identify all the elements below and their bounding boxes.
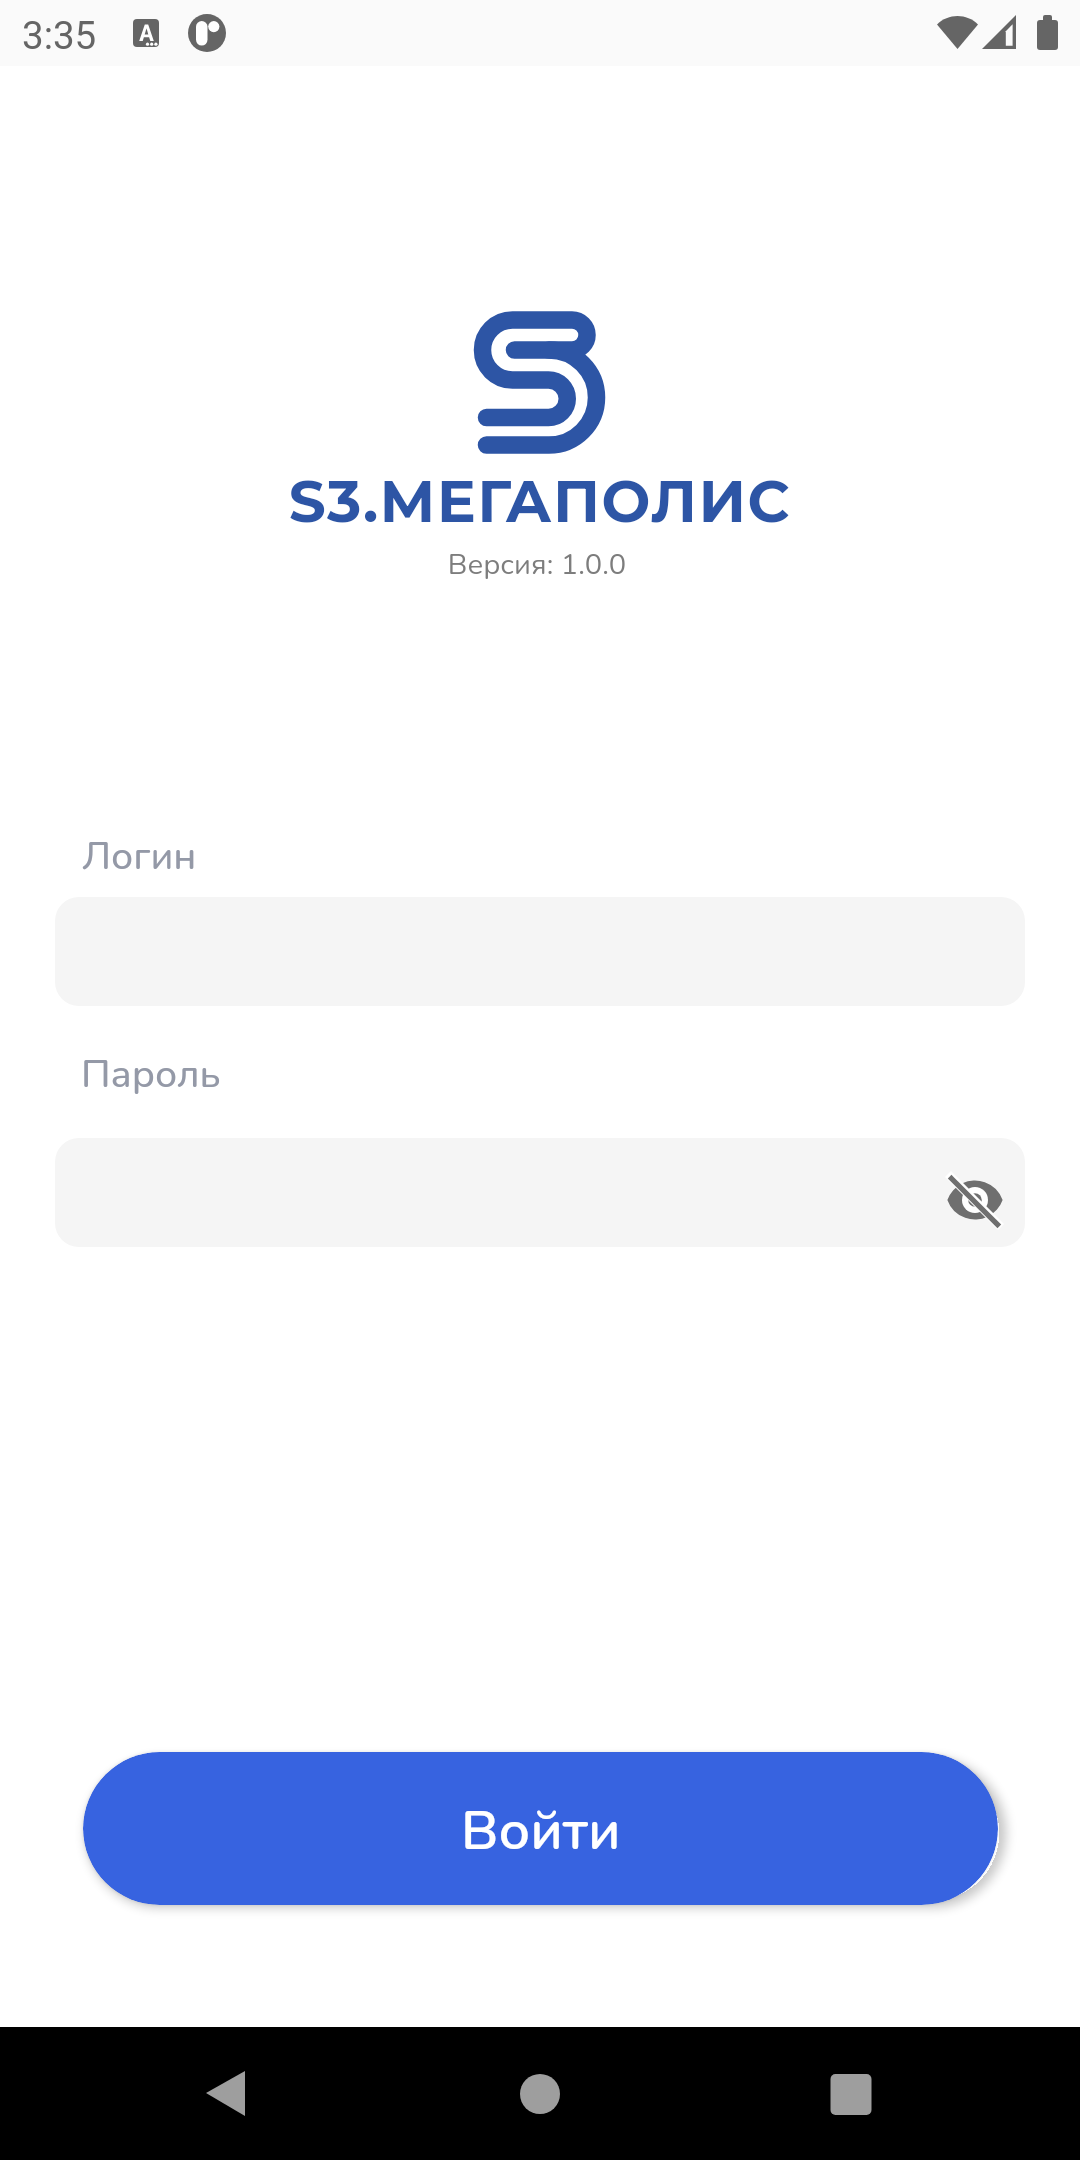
staticText: 3:35 <box>22 13 97 58</box>
button[interactable]: Поле ввода пароля <box>55 1138 1025 1247</box>
staticText: S3.МЕГАПОЛИС <box>0 466 1080 537</box>
button[interactable]: Последние приложения <box>806 2049 896 2139</box>
staticText: Версия: 1.0.0 <box>0 545 1077 585</box>
staticText: Пароль <box>81 1048 221 1101</box>
button[interactable]: Показать пароль <box>931 1156 1019 1244</box>
button[interactable]: Назад <box>180 2049 270 2139</box>
button[interactable]: Войти <box>83 1752 998 1905</box>
button[interactable]: Домой <box>495 2049 585 2139</box>
staticText: Логин <box>82 830 197 883</box>
staticText: Войти <box>461 1793 621 1868</box>
